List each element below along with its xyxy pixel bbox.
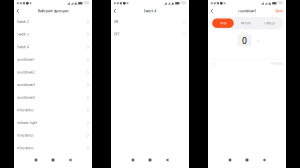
- button[interactable]: relay status: [14, 104, 92, 116]
- button[interactable]: Home: [141, 153, 158, 167]
- button[interactable]: Минуты: [234, 18, 258, 28]
- staticText: Часы: [219, 21, 226, 25]
- button[interactable]: countdown2: [14, 66, 92, 79]
- staticText: relay status: [17, 133, 33, 137]
- button[interactable]: Back: [255, 153, 272, 167]
- button[interactable]: Back: [111, 6, 119, 15]
- button[interactable]: Back: [61, 153, 78, 167]
- button[interactable]: indicate light: [14, 116, 92, 129]
- button[interactable]: Home: [238, 153, 255, 167]
- button[interactable]: Done: [273, 6, 286, 15]
- staticText: 100: [180, 1, 186, 5]
- staticText: countdown1: [17, 58, 35, 62]
- staticText: Выберите функцию: [38, 9, 68, 13]
- button[interactable]: Switch 4: [14, 41, 92, 53]
- staticText: 100: [83, 1, 89, 5]
- button[interactable]: relay status: [14, 129, 92, 142]
- button[interactable]: Switch 2: [14, 15, 92, 28]
- staticText: relay status: [17, 146, 33, 150]
- button[interactable]: Секунды: [258, 18, 282, 28]
- staticText: countdown1: [237, 9, 256, 13]
- button[interactable]: Часы: [212, 18, 234, 28]
- staticText: OFF: [114, 32, 120, 36]
- staticText: Switch 2: [17, 20, 29, 24]
- button[interactable]: Recents: [27, 153, 44, 167]
- button[interactable]: Recents: [221, 153, 238, 167]
- button[interactable]: OFF: [111, 28, 189, 41]
- staticText: countdown2: [17, 70, 35, 74]
- button[interactable]: Switch 3: [14, 28, 92, 41]
- staticText: никогда: [271, 62, 282, 65]
- staticText: Минуты: [241, 21, 251, 25]
- button[interactable]: Home: [44, 153, 61, 167]
- staticText: indicate light: [17, 121, 37, 125]
- button[interactable]: Recents: [124, 153, 141, 167]
- staticText: Секунды: [264, 21, 275, 25]
- staticText: Switch 4: [17, 45, 29, 49]
- button[interactable]: countdown3: [14, 79, 92, 91]
- staticText: —: [212, 62, 215, 65]
- button[interactable]: countdown4: [14, 91, 92, 104]
- button[interactable]: countdown1: [14, 53, 92, 66]
- staticText: Switch 4: [143, 9, 156, 13]
- staticText: Switch 3: [17, 32, 29, 36]
- button[interactable]: Back: [14, 6, 22, 15]
- staticText: countdown3: [17, 83, 35, 87]
- staticText: 100: [277, 1, 283, 5]
- staticText: relay status: [17, 108, 33, 112]
- button[interactable]: Back: [208, 6, 216, 15]
- button[interactable]: ON: [111, 15, 189, 28]
- staticText: ON: [114, 20, 118, 24]
- staticText: 0: [242, 35, 247, 46]
- staticText: ч: [257, 39, 259, 42]
- staticText: countdown4: [17, 96, 35, 100]
- staticText: Done: [275, 9, 283, 13]
- button[interactable]: relay status: [14, 142, 92, 154]
- button[interactable]: Back: [158, 153, 175, 167]
